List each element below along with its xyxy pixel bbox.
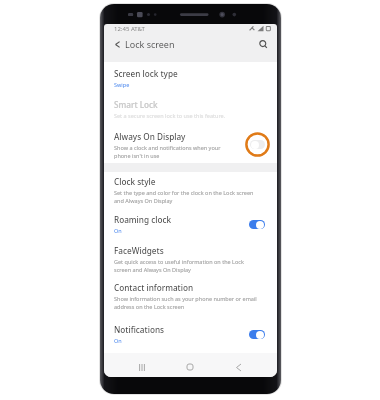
button[interactable]: Search [256,37,270,51]
button[interactable]: Notifications [104,320,277,350]
button[interactable]: FaceWidgets [104,241,277,278]
staticText: Screen lock type [114,68,178,79]
staticText: 12:45 AT&T [114,25,145,33]
button[interactable]: Always On Display switch [245,132,270,157]
staticText: Smart Lock [114,99,158,110]
button[interactable]: Switch on [249,330,265,339]
staticText: Show information such as your phone numb… [114,295,262,311]
button[interactable]: Recents [133,358,151,376]
staticText: Swipe [114,81,130,88]
button[interactable]: Roaming clock [104,210,277,241]
staticText: On [114,337,122,344]
button[interactable]: Home [181,358,199,376]
button[interactable]: Smart Lock [104,95,277,127]
button[interactable]: Back [229,358,247,376]
button[interactable]: Always On Display [104,127,277,163]
staticText: On [114,227,122,234]
staticText: Contact information [114,282,194,293]
staticText: Always On Display [114,131,186,142]
button[interactable]: Screen lock type [104,64,277,95]
button[interactable]: Navigate up [112,37,122,51]
staticText: Get quick access to useful information o… [114,258,262,274]
staticText: Show a clock and notifications when your… [114,144,233,160]
staticText: Notifications [114,324,164,335]
staticText: Clock style [114,176,156,187]
staticText: Set a secure screen lock to use this fea… [114,112,226,119]
staticText: Lock screen [125,38,175,50]
button[interactable]: Switch on [249,220,265,229]
staticText: FaceWidgets [114,245,164,256]
staticText: Set the type and color for the clock on … [114,189,262,205]
button[interactable]: Clock style [104,172,277,210]
button[interactable]: Contact information [104,278,277,320]
staticText: Roaming clock [114,214,171,225]
